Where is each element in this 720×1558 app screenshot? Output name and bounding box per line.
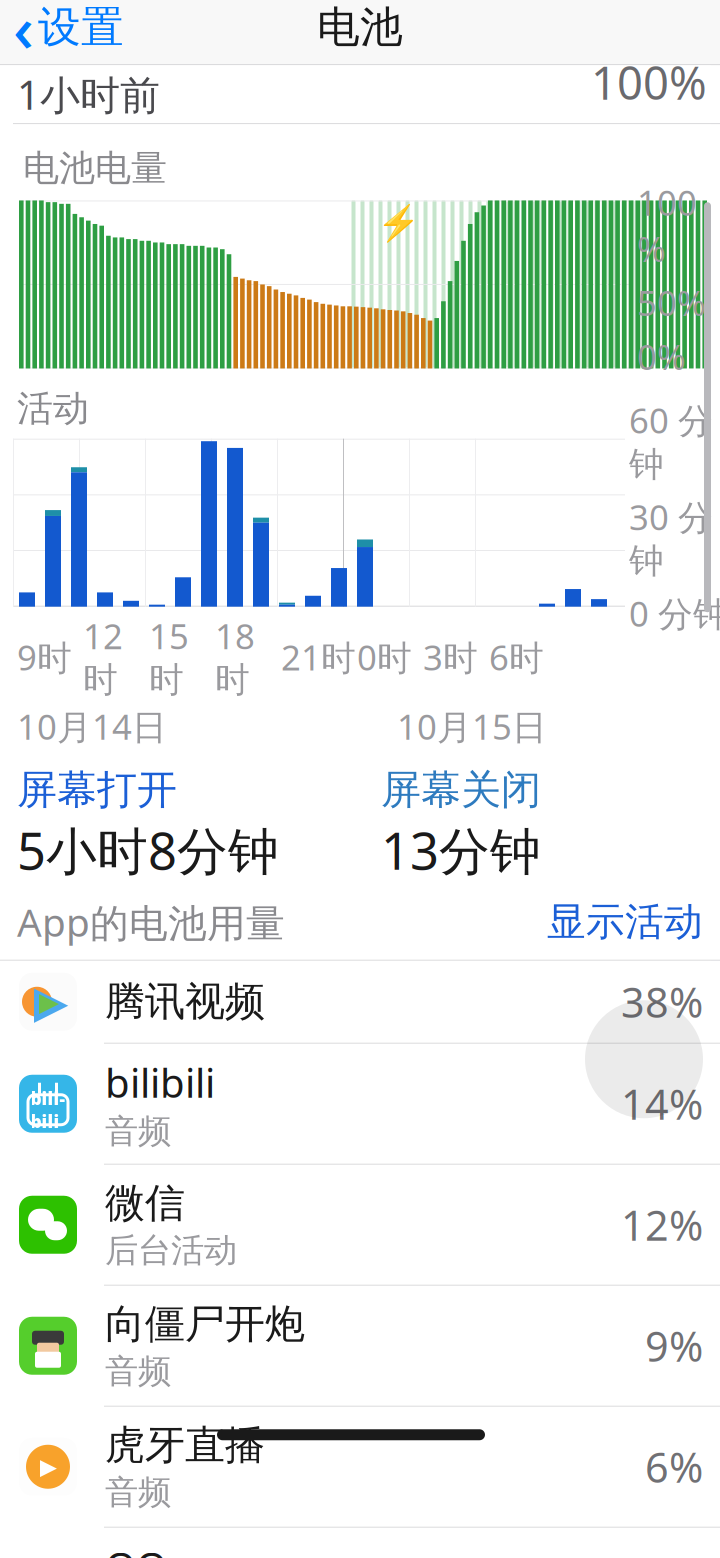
button[interactable]: ▶ [0, 961, 720, 1044]
staticText: ▶ [33, 976, 68, 1027]
staticText: 100% [637, 179, 697, 271]
staticText: 12时 [83, 613, 123, 701]
staticText: 38% [621, 974, 703, 1029]
staticText: 屏幕关闭 [381, 765, 541, 814]
staticText: 音频 [105, 1111, 171, 1152]
button[interactable]: 显示活动 [547, 892, 720, 951]
staticText: 显示活动 [547, 898, 703, 945]
staticText: 设置 [38, 1, 124, 53]
staticText: ▶ [38, 987, 59, 1017]
staticText: 100% [591, 52, 707, 112]
staticText: 0时 [357, 634, 412, 680]
button[interactable]: 屏幕打开 [17, 765, 279, 884]
staticText: 15时 [149, 613, 189, 701]
staticText: 9% [645, 1318, 703, 1373]
staticText: bilibili [30, 1087, 65, 1133]
staticText: 14% [621, 1076, 703, 1131]
staticText: ⚡ [377, 203, 420, 242]
staticText: 屏幕打开 [17, 765, 177, 814]
button[interactable]: 微信 [0, 1165, 720, 1286]
button[interactable]: 向僵尸开炮 [0, 1286, 720, 1407]
staticText: 10月14日 [17, 703, 167, 749]
staticText: bilibili [105, 1056, 215, 1109]
staticText: 9时 [17, 634, 72, 680]
staticText: 3时 [423, 634, 478, 680]
staticText: 1小时前 [17, 68, 160, 121]
staticText: 音频 [105, 1472, 171, 1513]
staticText: 30 分钟 [629, 494, 713, 582]
staticText: 电池电量 [23, 146, 167, 190]
button[interactable]: ▶ [0, 1407, 720, 1528]
staticText: 10月15日 [397, 703, 547, 749]
staticText: 21时 [281, 634, 356, 680]
staticText: 60 分钟 [629, 397, 713, 486]
button[interactable]: bilibili [0, 1044, 720, 1165]
staticText: 音频 [105, 1351, 171, 1392]
staticText: 5小时8分钟 [17, 816, 279, 884]
staticText: 后台活动 [105, 1230, 237, 1271]
staticText: 13分钟 [381, 816, 541, 884]
staticText: QQ [105, 1540, 167, 1558]
staticText: 虎牙直播 [105, 1421, 265, 1470]
staticText: 0% [637, 333, 686, 379]
staticText: 6% [645, 1439, 703, 1494]
staticText: App的电池用量 [17, 896, 285, 947]
staticText: 腾讯视频 [105, 977, 265, 1026]
staticText: 0 分钟 [629, 590, 720, 636]
button[interactable]: ‹ [0, 0, 136, 64]
staticText: 18时 [215, 613, 255, 701]
staticText: 6时 [489, 634, 544, 680]
staticText: 向僵尸开炮 [105, 1300, 305, 1349]
staticText: 电池 [317, 1, 403, 53]
staticText: ‹ [13, 0, 34, 70]
button[interactable]: 屏幕关闭 [381, 765, 541, 884]
staticText: 12% [621, 1197, 703, 1252]
staticText: ▶ [39, 1454, 56, 1480]
staticText: 50% [637, 279, 706, 325]
staticText: 活动 [17, 386, 89, 431]
button[interactable]: QQ [0, 1528, 720, 1558]
staticText: 微信 [105, 1179, 185, 1228]
